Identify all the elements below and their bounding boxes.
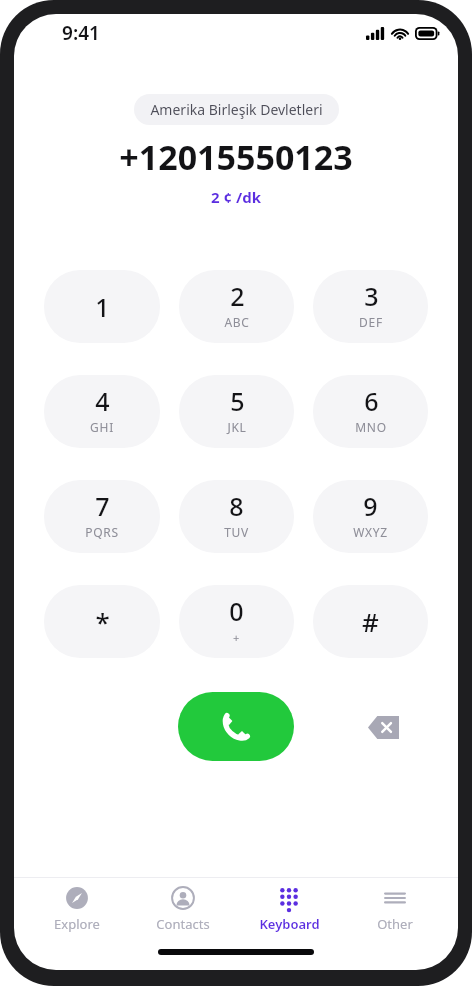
staticText: 9:41 [62,20,100,46]
button[interactable]: Amerika Birleşik Devletleri [134,94,339,125]
staticText: 4 [95,384,110,418]
staticText: * [95,604,110,639]
staticText: 2 ¢ /dk [211,187,261,207]
staticText: ABC [224,314,250,330]
staticText: Explore [54,915,100,933]
staticText: PQRS [85,524,119,540]
staticText: # [362,604,379,639]
button[interactable]: 5 [179,375,294,448]
staticText: 0 [229,594,244,628]
button[interactable]: 0 [179,585,294,658]
staticText: MNO [355,419,387,435]
button[interactable]: 8 [179,480,294,553]
button[interactable]: 2 [179,270,294,343]
staticText: 6 [364,384,379,418]
button[interactable]: 4 [44,375,160,448]
staticText: Keyboard [259,915,320,933]
staticText: GHI [90,419,114,435]
staticText: DEF [359,314,383,330]
button[interactable]: 1 [44,270,160,343]
staticText: Other [377,915,413,933]
button[interactable]: 6 [313,375,428,448]
button[interactable]: Other [342,881,448,937]
button[interactable]: Keyboard [236,881,342,937]
staticText: 5 [230,384,245,418]
staticText: 8 [229,489,244,523]
staticText: 2 [230,279,245,313]
button[interactable]: 7 [44,480,160,553]
button[interactable]: Explore [24,881,130,937]
staticText: 7 [95,489,110,523]
staticText: Contacts [156,915,210,933]
button[interactable]: Contacts [130,881,236,937]
button[interactable]: * [44,585,160,658]
staticText: 1 [95,290,110,324]
button[interactable]: Call [178,692,294,761]
staticText: TUV [224,524,249,540]
staticText: +12015550123 [119,134,353,180]
staticText: + [233,630,240,645]
staticText: JKL [227,419,247,435]
button[interactable]: 9 [313,480,428,553]
button[interactable]: # [313,585,428,658]
button[interactable]: Backspace [360,704,406,750]
staticText: Amerika Birleşik Devletleri [150,100,323,119]
button[interactable]: 3 [313,270,428,343]
staticText: WXYZ [353,524,388,540]
staticText: 3 [364,279,379,313]
staticText: 9 [363,489,378,523]
